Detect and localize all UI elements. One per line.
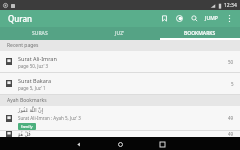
staticText: page 50, Juz' 3 (18, 63, 49, 69)
button[interactable]: Surat Ali-Imran (0, 51, 240, 72)
button[interactable]: Bookmarks (157, 10, 171, 27)
staticText: JUZ' (115, 30, 125, 37)
button[interactable]: JUMP (202, 10, 221, 27)
staticText: JUMP (205, 15, 218, 22)
staticText: 49 (228, 115, 234, 121)
staticText: Surat Bakara (18, 77, 52, 84)
staticText: BOOKMARKS (184, 30, 216, 37)
staticText: Surat Ali-Imran (18, 55, 57, 62)
button[interactable]: قُلْ هُوَ (0, 131, 240, 137)
button[interactable]: SURAS (0, 27, 80, 40)
button[interactable]: BOOKMARKS (160, 27, 240, 40)
staticText: Surat Ali-Imran : Ayah 5, Juz' 3 (18, 115, 81, 121)
button[interactable]: Home (114, 138, 126, 150)
staticText: family (21, 124, 33, 129)
staticText: 50 (228, 59, 234, 65)
button[interactable]: Quran (8, 13, 33, 24)
staticText: إِنَّ اللَّهَ غَفُورٌ (18, 107, 44, 114)
staticText: page 5, Juz' 1 (18, 85, 46, 91)
staticText: Recent pages (7, 42, 39, 49)
staticText: 49 (228, 131, 234, 137)
button[interactable]: إِنَّ اللَّهَ غَفُورٌ (0, 106, 240, 130)
staticText: قُلْ هُوَ (18, 131, 31, 137)
button[interactable]: Back (72, 138, 84, 150)
button[interactable]: Surat Bakara (0, 73, 240, 94)
button[interactable]: Recents (156, 138, 168, 150)
button[interactable]: Night mode (172, 10, 186, 27)
button[interactable]: JUZ' (80, 27, 160, 40)
staticText: Quran (8, 13, 33, 24)
staticText: 5 (231, 81, 234, 87)
button[interactable]: Search (187, 10, 201, 27)
staticText: Ayah Bookmarks (7, 97, 47, 104)
button[interactable]: More options (222, 10, 236, 27)
staticText: SURAS (32, 30, 48, 37)
staticText: 12:34 (224, 2, 237, 9)
